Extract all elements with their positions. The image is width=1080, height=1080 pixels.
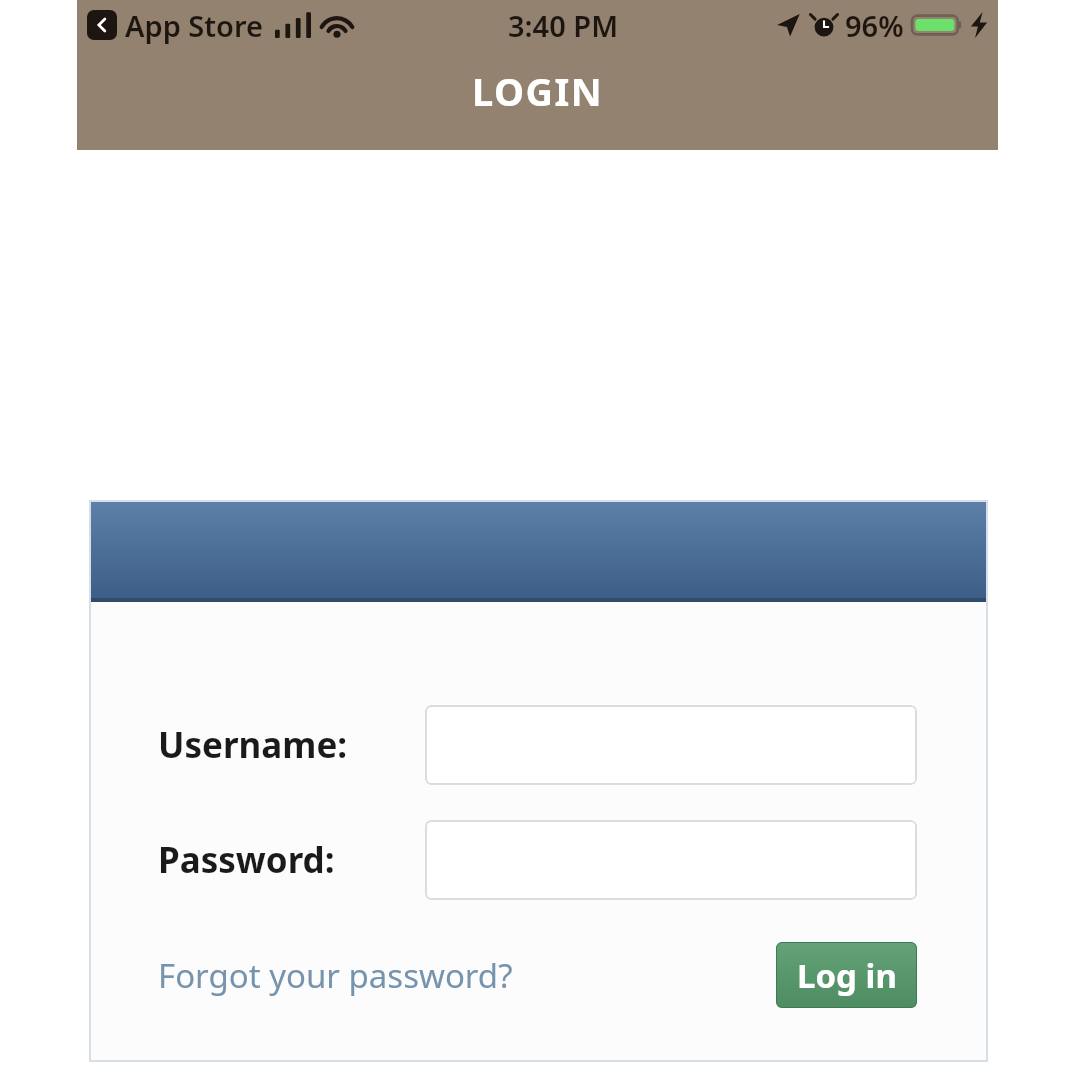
staticText: Username:	[158, 721, 425, 769]
button[interactable]: Log in	[776, 942, 917, 1008]
staticText: App Store	[125, 6, 263, 45]
staticText: LOGIN	[472, 65, 604, 117]
staticText: 96%	[845, 6, 904, 45]
button[interactable]: Forgot your password?	[158, 945, 513, 1006]
staticText: Password:	[158, 836, 425, 884]
staticText: Log in	[797, 953, 897, 998]
button[interactable]: Back	[87, 10, 117, 40]
staticText: Forgot your password?	[158, 953, 513, 998]
button[interactable]: Password:	[425, 820, 917, 900]
staticText: 3:40 PM	[508, 6, 619, 45]
button[interactable]: Username:	[425, 705, 917, 785]
